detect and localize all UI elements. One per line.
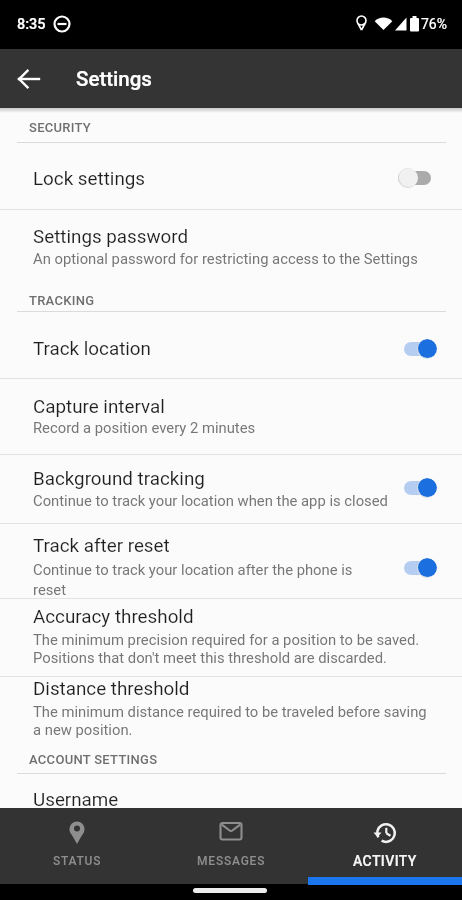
staticText: ACCOUNT SETTINGS [29, 752, 158, 767]
staticText: Settings [76, 67, 152, 91]
staticText: Record a position every 2 minutes [33, 419, 256, 436]
button[interactable] [0, 774, 462, 808]
button[interactable] [0, 599, 462, 676]
staticText: TRACKING [29, 293, 95, 308]
button[interactable] [154, 808, 308, 884]
button[interactable] [0, 312, 462, 378]
button[interactable] [8, 58, 50, 100]
staticText: STATUS [53, 854, 102, 868]
staticText: An optional password for restricting acc… [33, 250, 418, 267]
button[interactable] [0, 524, 462, 598]
staticText: Continue to track your location after th… [33, 561, 353, 578]
staticText: Username [33, 789, 119, 811]
staticText: Positions that don't meet this threshold… [33, 649, 387, 666]
button[interactable] [308, 808, 462, 884]
staticText: Background tracking [33, 468, 205, 490]
button[interactable] [0, 808, 154, 884]
staticText: Track location [33, 338, 151, 360]
button[interactable] [0, 210, 462, 283]
staticText: Capture interval [33, 396, 165, 418]
staticText: The minimum precision required for a pos… [33, 631, 420, 648]
staticText: Accuracy threshold [33, 606, 194, 628]
staticText: The minimum distance required to be trav… [33, 703, 427, 720]
staticText: 8:35 [17, 16, 46, 33]
staticText: Distance threshold [33, 678, 190, 700]
staticText: Track after reset [33, 535, 170, 557]
button[interactable] [0, 379, 462, 454]
staticText: Settings password [33, 226, 189, 248]
staticText: Continue to track your location when the… [33, 492, 388, 509]
staticText: SECURITY [29, 120, 92, 135]
staticText: reset [33, 581, 67, 598]
staticText: 76% [421, 16, 447, 32]
button[interactable] [0, 677, 462, 744]
staticText: Lock settings [33, 168, 146, 190]
staticText: MESSAGES [197, 854, 266, 868]
staticText: ACTIVITY [353, 853, 417, 869]
button[interactable] [0, 455, 462, 523]
button[interactable] [0, 143, 462, 209]
staticText: a new position. [33, 721, 133, 738]
